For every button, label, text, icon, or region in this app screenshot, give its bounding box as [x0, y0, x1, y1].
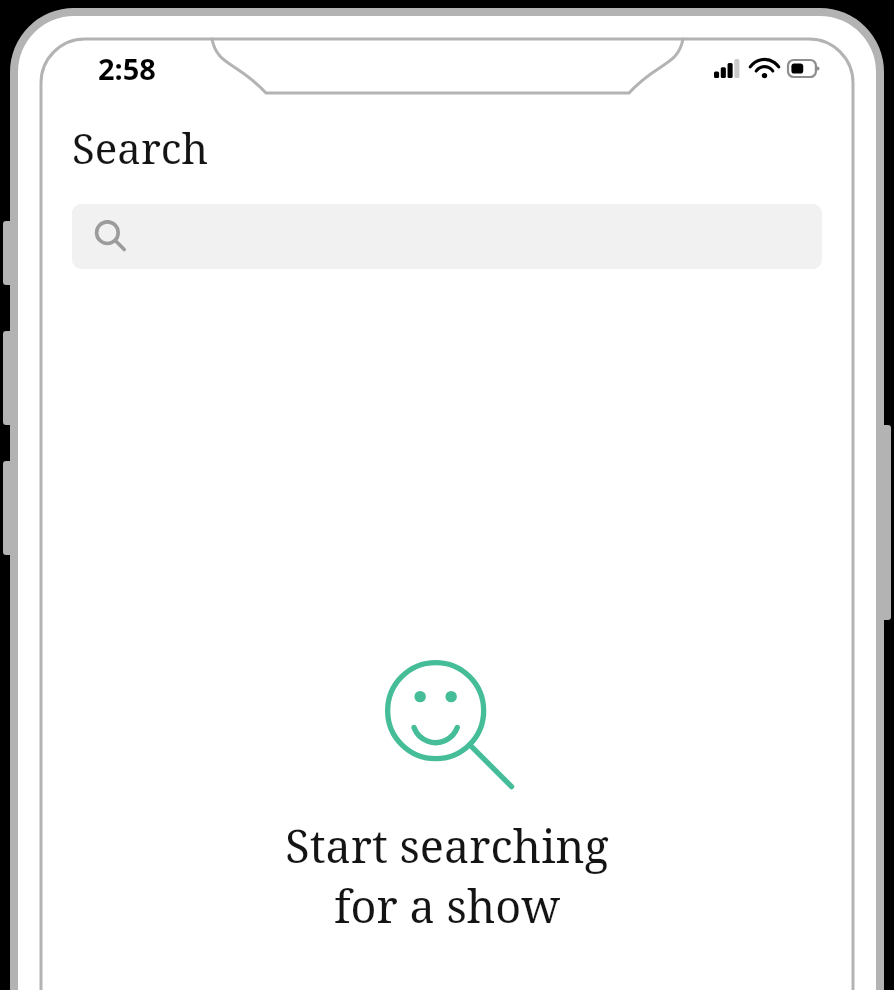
- staticText: Search: [72, 119, 209, 176]
- staticText: 2:58: [98, 49, 156, 88]
- staticText: Start searching for a show: [285, 815, 609, 936]
- other: Search for a show: [384, 659, 511, 789]
- button[interactable]: Search: [72, 204, 822, 269]
